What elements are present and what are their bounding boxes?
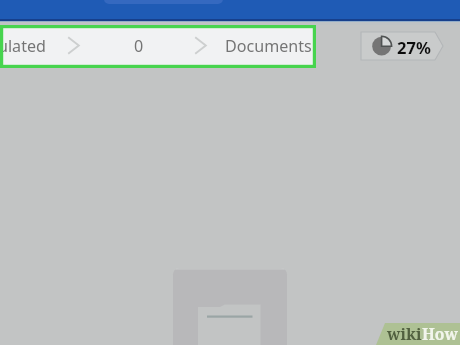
staticText: Documents <box>225 35 312 57</box>
staticText: 27% <box>397 36 431 58</box>
staticText: ulated <box>0 35 46 57</box>
staticText: wiki <box>387 323 422 344</box>
button[interactable]: Documents <box>225 28 313 65</box>
staticText: 0 <box>134 35 144 57</box>
staticText: How <box>422 323 458 344</box>
button[interactable]: ulated <box>0 28 60 65</box>
button[interactable]: 0 <box>110 28 166 65</box>
button[interactable]: 27% <box>360 31 444 61</box>
button[interactable]: Search <box>104 0 223 4</box>
